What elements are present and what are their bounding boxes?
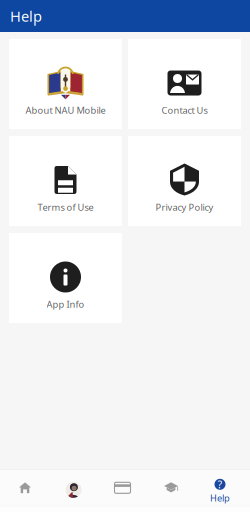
staticText: Privacy Policy bbox=[155, 201, 213, 213]
button[interactable]: ? bbox=[195, 470, 245, 506]
staticText: App Info bbox=[46, 298, 84, 310]
staticText: Help bbox=[210, 492, 230, 504]
button[interactable]: App Info bbox=[9, 233, 122, 323]
button[interactable]: Academics bbox=[164, 482, 179, 493]
button[interactable]: Terms of Use bbox=[9, 136, 122, 226]
staticText: About NAU Mobile bbox=[25, 104, 105, 116]
button[interactable]: Cards bbox=[114, 482, 130, 494]
staticText: ? bbox=[217, 477, 222, 491]
staticText: Terms of Use bbox=[37, 201, 93, 213]
button[interactable]: Contact Us bbox=[128, 39, 241, 129]
staticText: Help bbox=[10, 6, 42, 26]
button[interactable]: About NAU Mobile bbox=[9, 39, 122, 129]
staticText: Contact Us bbox=[161, 104, 207, 116]
button[interactable]: Privacy Policy bbox=[128, 136, 241, 226]
button[interactable]: Home bbox=[18, 482, 31, 494]
button[interactable]: Profile bbox=[65, 482, 81, 498]
